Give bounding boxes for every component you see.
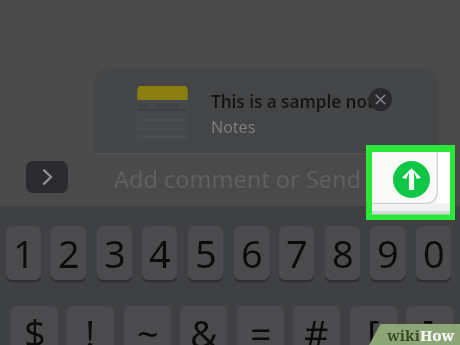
button[interactable]: 2 [51,226,86,280]
staticText: This is a sample note [211,90,384,113]
staticText: ~ [137,307,159,345]
button[interactable]: $ [11,306,58,345]
staticText: # [304,307,329,345]
staticText: 4 [149,227,171,279]
staticText: 7 [286,227,308,279]
button[interactable]: 7 [279,226,314,280]
staticText: 3 [104,227,126,279]
staticText: $ [24,307,46,345]
button[interactable]: [ [350,306,397,345]
button[interactable]: Send [393,161,430,198]
button[interactable]: Remove attachment [369,88,392,111]
button[interactable]: Next field [26,161,68,193]
staticText: ] [423,307,436,345]
button[interactable]: ~ [124,306,171,345]
staticText: Add comment or Send [114,163,362,195]
button[interactable]: # [293,306,340,345]
button[interactable]: = [237,306,284,345]
button[interactable]: 9 [370,226,405,280]
button[interactable]: 5 [188,226,223,280]
button[interactable]: 3 [97,226,132,280]
button[interactable]: & [180,306,227,345]
button[interactable]: 6 [234,226,269,280]
staticText: 0 [423,227,445,279]
button[interactable]: 8 [325,226,360,280]
staticText: & [190,307,218,345]
button[interactable] [95,68,438,154]
staticText: How [420,325,455,345]
staticText: 6 [241,227,263,279]
button[interactable]: Add comment or Send [95,155,438,203]
button[interactable]: 1 [6,226,41,280]
staticText: ! [85,307,96,345]
button[interactable]: ! [67,306,114,345]
staticText: 5 [195,227,217,279]
staticText: 8 [332,227,354,279]
staticText: [ [367,307,380,345]
button[interactable]: 0 [416,226,451,280]
staticText: 2 [58,227,80,279]
button[interactable]: 4 [142,226,177,280]
staticText: wiki [387,325,420,345]
button[interactable]: ] [406,306,453,345]
staticText: 1 [13,227,35,279]
staticText: Notes [211,116,256,138]
staticText: = [250,307,272,345]
staticText: 9 [377,227,399,279]
